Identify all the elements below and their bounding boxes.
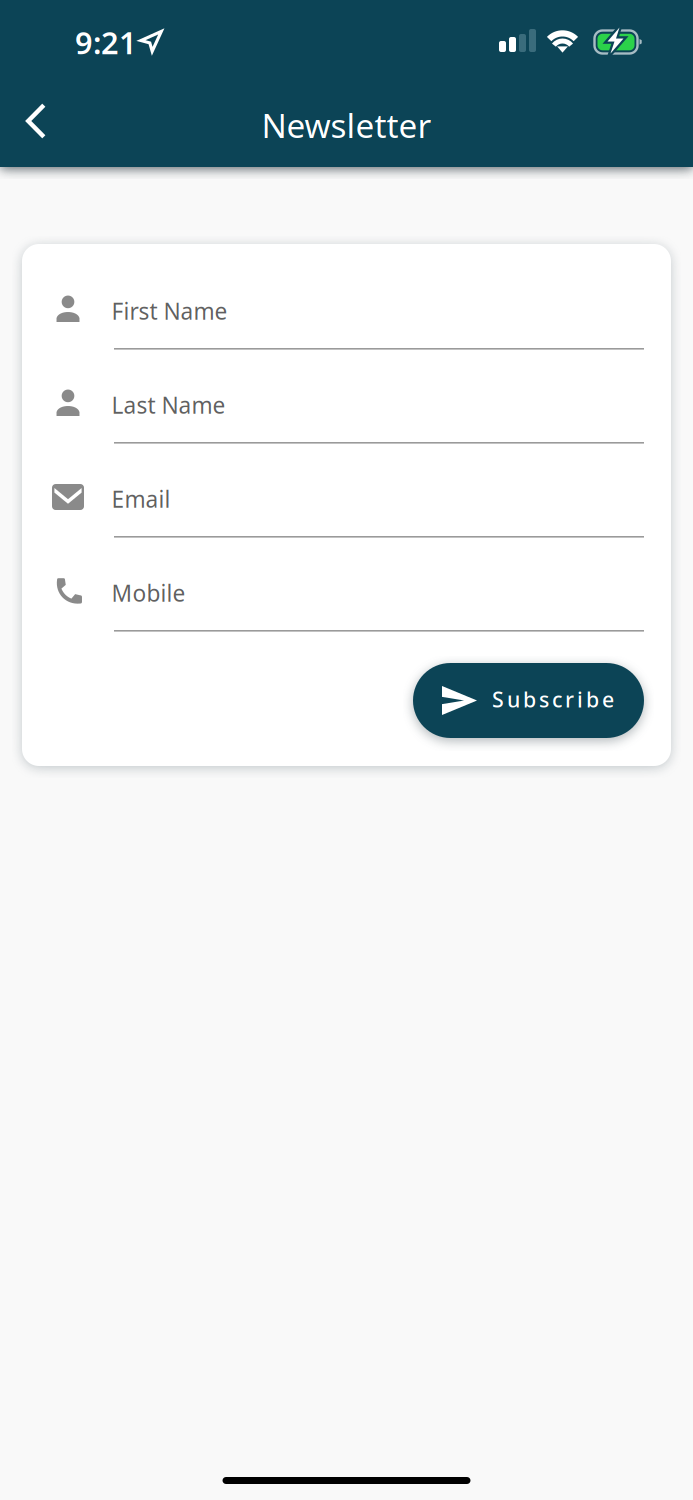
- staticText: First Name: [111, 296, 227, 326]
- button[interactable]: Last Name: [22, 377, 643, 454]
- staticText: Last Name: [111, 390, 225, 420]
- staticText: 9:21: [75, 22, 137, 63]
- button[interactable]: Email: [22, 471, 643, 548]
- staticText: Newsletter: [261, 103, 431, 147]
- staticText: Subscribe: [492, 685, 614, 713]
- staticText: Email: [111, 484, 170, 514]
- staticText: Mobile: [111, 578, 185, 608]
- button[interactable]: First Name: [22, 283, 643, 360]
- button[interactable]: Subscribe: [413, 663, 644, 738]
- button[interactable]: Back: [5, 90, 67, 152]
- button[interactable]: Mobile: [22, 565, 643, 642]
